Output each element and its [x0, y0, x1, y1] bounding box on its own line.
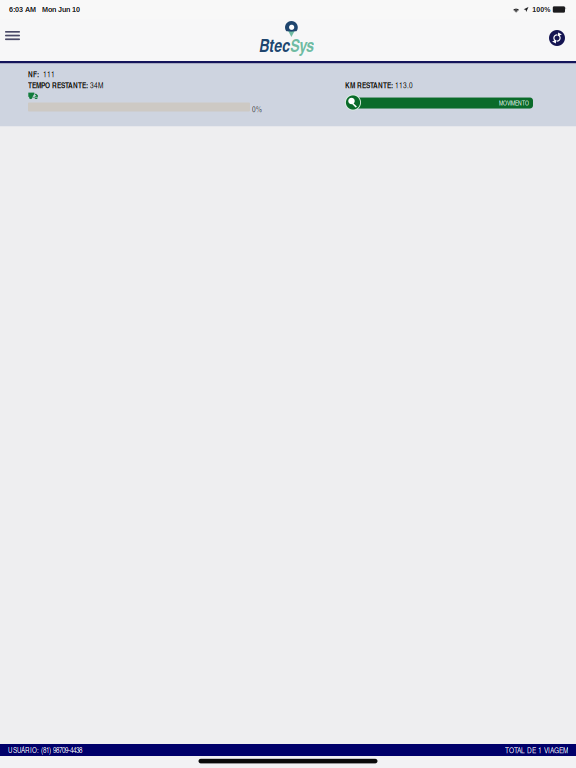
- staticText: 6:03 AM Mon Jun 10: [9, 5, 80, 13]
- staticText: Btec: [259, 33, 290, 57]
- staticText: MOVIMENTO: [499, 99, 529, 107]
- staticText: Sys: [290, 33, 314, 57]
- button[interactable]: Menu: [5, 31, 20, 40]
- staticText: 100%: [532, 6, 550, 13]
- staticText: KM RESTANTE: 113.0: [345, 79, 413, 90]
- staticText: USUÁRIO: (81) 98709-4438: [8, 745, 82, 755]
- staticText: TOTAL DE 1 VIAGEM: [505, 744, 568, 755]
- staticText: 0%: [252, 103, 262, 114]
- staticText: TEMPO RESTANTE: 34M: [28, 79, 103, 90]
- button[interactable]: Refresh: [549, 30, 565, 46]
- staticText: NF: 111: [28, 68, 55, 79]
